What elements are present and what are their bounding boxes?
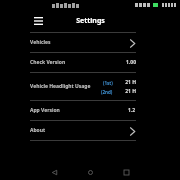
other: Open xyxy=(128,37,136,49)
staticText: (1st) xyxy=(103,80,113,86)
staticText: Vehicle Headlight Usage xyxy=(30,83,101,90)
staticText: Vehicles xyxy=(30,39,128,46)
button[interactable]: Vehicle Headlight Usage xyxy=(30,73,136,100)
button[interactable]: Back xyxy=(43,164,65,180)
staticText: 21 H xyxy=(122,88,136,95)
button[interactable]: Open navigation menu xyxy=(30,13,46,29)
staticText: (2nd) xyxy=(101,89,113,95)
staticText: Settings xyxy=(76,16,105,26)
button[interactable]: App Version xyxy=(30,101,136,120)
staticText: 21 H xyxy=(122,79,136,86)
staticText: 1.2 xyxy=(128,107,136,114)
staticText: 1.00 xyxy=(126,59,136,66)
button[interactable]: Vehicles xyxy=(30,33,136,52)
staticText: App Version xyxy=(30,107,128,114)
other: Open xyxy=(128,125,136,137)
button[interactable]: About xyxy=(30,121,136,140)
staticText: Check Version xyxy=(30,59,126,66)
staticText: About xyxy=(30,127,128,134)
button[interactable]: Check Version xyxy=(30,53,136,72)
button[interactable]: Recent apps xyxy=(115,164,137,180)
button[interactable]: Home xyxy=(79,164,101,180)
